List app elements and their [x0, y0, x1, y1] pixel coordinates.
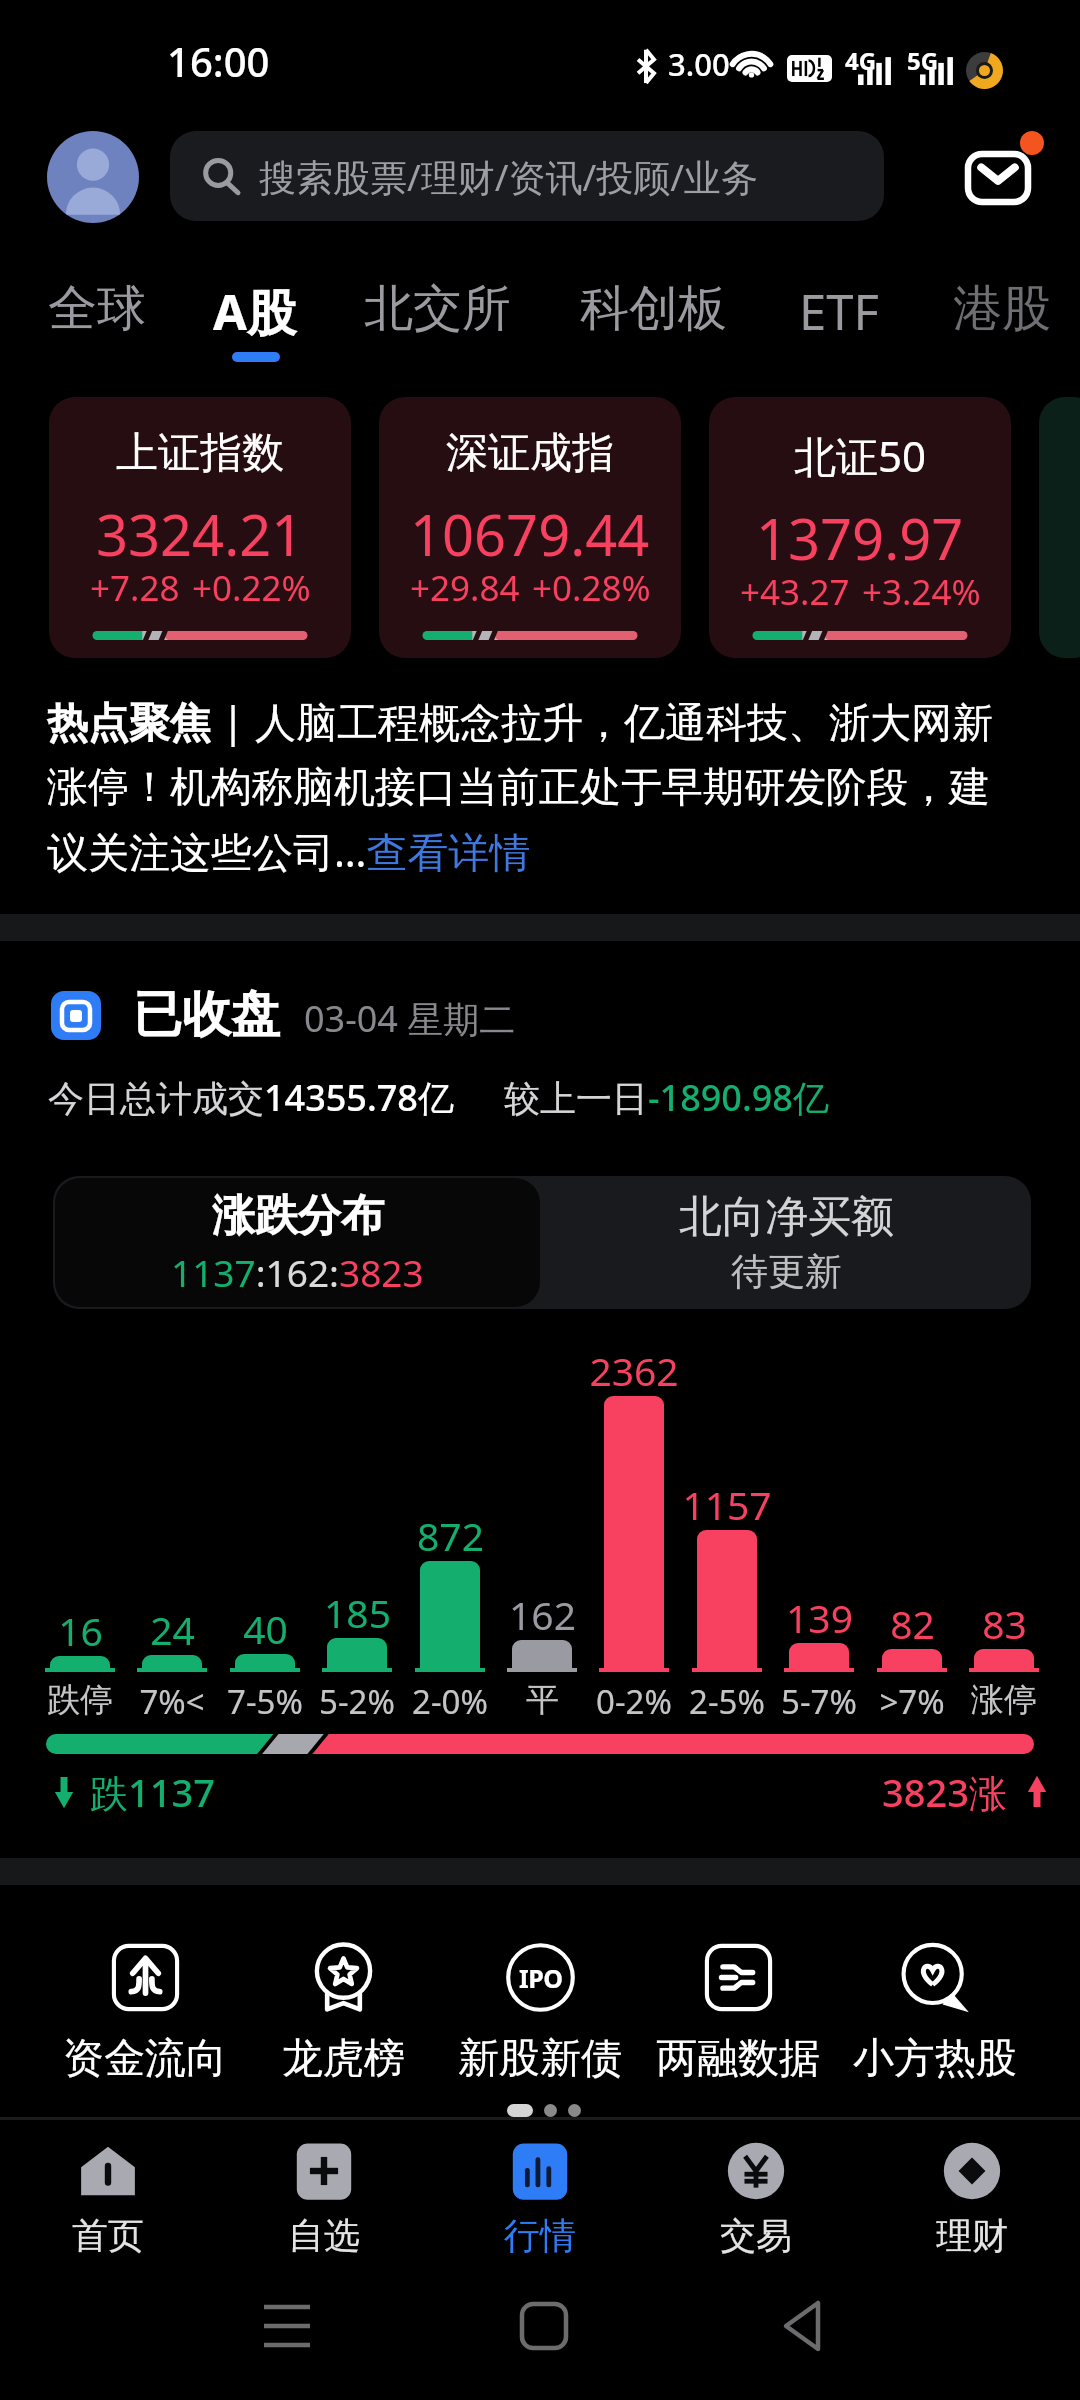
staticText: +0.22%	[192, 564, 311, 612]
staticText: 理财	[936, 2213, 1008, 2258]
staticText: 跌停	[47, 1679, 113, 1721]
button[interactable]: 港股	[953, 270, 1051, 375]
button[interactable]: IPO	[441, 1942, 639, 2085]
staticText: +3.24%	[862, 568, 981, 616]
staticText: 0-2%	[596, 1679, 672, 1724]
staticText: 北交所	[364, 278, 511, 340]
staticText: 已收盘	[133, 984, 280, 1046]
staticText: 40	[243, 1602, 288, 1655]
staticText: 涨停	[971, 1679, 1037, 1721]
staticText: 872	[417, 1509, 484, 1562]
staticText: 平	[526, 1679, 559, 1721]
staticText: 83	[982, 1597, 1027, 1650]
staticText: 待更新	[731, 1248, 842, 1295]
staticText: 5-2%	[319, 1679, 395, 1724]
staticText: 24	[150, 1603, 195, 1656]
button[interactable]: 全球	[48, 270, 146, 375]
button[interactable]: 龙虎榜	[244, 1942, 442, 2085]
button[interactable]: 北交所	[364, 270, 511, 375]
staticText: 首页	[72, 2213, 144, 2258]
staticText: 5-7%	[781, 1679, 857, 1724]
staticText: 深证成指	[446, 427, 614, 480]
button[interactable]: 上证指数	[49, 397, 351, 658]
staticText: 2-5%	[689, 1679, 765, 1724]
button[interactable]: 首页	[0, 2124, 216, 2276]
button[interactable]: 科创板	[580, 270, 727, 375]
staticText: 港股	[953, 278, 1051, 340]
staticText: +0.28%	[532, 564, 651, 612]
button[interactable]: Messages	[950, 125, 1050, 220]
staticText: 搜索股票/理财/资讯/投顾/业务	[259, 151, 759, 202]
button[interactable]: 自选	[216, 2124, 432, 2276]
staticText: IPO	[519, 1961, 563, 1995]
button[interactable]: 涨跌分布	[55, 1178, 540, 1307]
staticText: 7%<	[139, 1679, 205, 1724]
staticText: 小方热股	[853, 2033, 1017, 2085]
staticText: 北向净买额	[679, 1190, 894, 1244]
staticText: 1379.97	[756, 500, 964, 576]
staticText: 5G	[907, 44, 939, 77]
button[interactable]: 深证成指	[379, 397, 681, 658]
button[interactable]: 北证50	[709, 397, 1011, 658]
staticText: 交易	[720, 2213, 792, 2258]
button[interactable]: 理财	[864, 2124, 1080, 2276]
staticText: 185	[324, 1586, 391, 1639]
staticText: A股	[213, 278, 296, 345]
staticText: +43.27	[740, 568, 850, 616]
button[interactable]: 行情	[432, 2124, 648, 2276]
staticText: 1157	[682, 1478, 772, 1531]
staticText: 162	[509, 1588, 576, 1641]
staticText: 自选	[288, 2213, 360, 2258]
staticText: >7%	[879, 1679, 945, 1724]
staticText: 跌1137	[90, 1766, 215, 1818]
staticText: 2-0%	[412, 1679, 488, 1724]
staticText: 北证50	[794, 427, 927, 484]
button[interactable]: Profile	[47, 131, 139, 223]
staticText: +29.84	[410, 564, 520, 612]
staticText: ETF	[799, 278, 879, 345]
staticText: 今日总计成交14355.78亿	[48, 1073, 454, 1122]
button[interactable]: 小方热股	[836, 1942, 1034, 2085]
button[interactable]: 热点聚焦 | 人脑工程概念拉升，亿通科技、浙大网新涨停！机构称脑机接口当前正处于…	[47, 693, 1027, 879]
staticText: 2362	[589, 1344, 679, 1397]
staticText: 上证指数	[116, 427, 284, 480]
staticText: 03-04 星期二	[304, 994, 516, 1043]
staticText: 7-5%	[227, 1679, 303, 1724]
button[interactable]: ETF	[799, 270, 879, 375]
staticText: 16	[58, 1604, 103, 1657]
button[interactable]: 两融数据	[639, 1942, 837, 2085]
button[interactable]: 资金流向	[46, 1942, 244, 2085]
staticText: 1137:162:3823	[171, 1247, 424, 1297]
staticText: 行情	[504, 2213, 576, 2258]
button[interactable]: 交易	[648, 2124, 864, 2276]
button[interactable]: 北向净买额	[542, 1176, 1031, 1309]
staticText: 3324.21	[96, 496, 304, 572]
button[interactable]: 搜索股票/理财/资讯/投顾/业务	[170, 131, 884, 221]
staticText: 10679.44	[410, 496, 650, 572]
staticText: 3823涨	[882, 1766, 1007, 1818]
staticText: 4G	[845, 44, 877, 77]
staticText: 热点聚焦 | 人脑工程概念拉升，亿通科技、浙大网新涨停！机构称脑机接口当前正处于…	[47, 693, 1027, 879]
staticText: 139	[786, 1591, 853, 1644]
staticText: 资金流向	[63, 2033, 227, 2085]
staticText: 新股新债	[458, 2033, 622, 2085]
staticText: 16:00	[167, 34, 270, 88]
staticText: 涨跌分布	[212, 1189, 384, 1243]
staticText: 两融数据	[656, 2033, 820, 2085]
staticText: 3.00	[668, 43, 730, 85]
staticText: 较上一日-1890.98亿	[504, 1073, 829, 1122]
staticText: 82	[890, 1597, 935, 1650]
staticText: +7.28	[90, 564, 180, 612]
staticText: 科创板	[580, 278, 727, 340]
staticText: 全球	[48, 278, 146, 340]
button[interactable]: A股	[213, 270, 296, 375]
staticText: 龙虎榜	[282, 2033, 405, 2085]
